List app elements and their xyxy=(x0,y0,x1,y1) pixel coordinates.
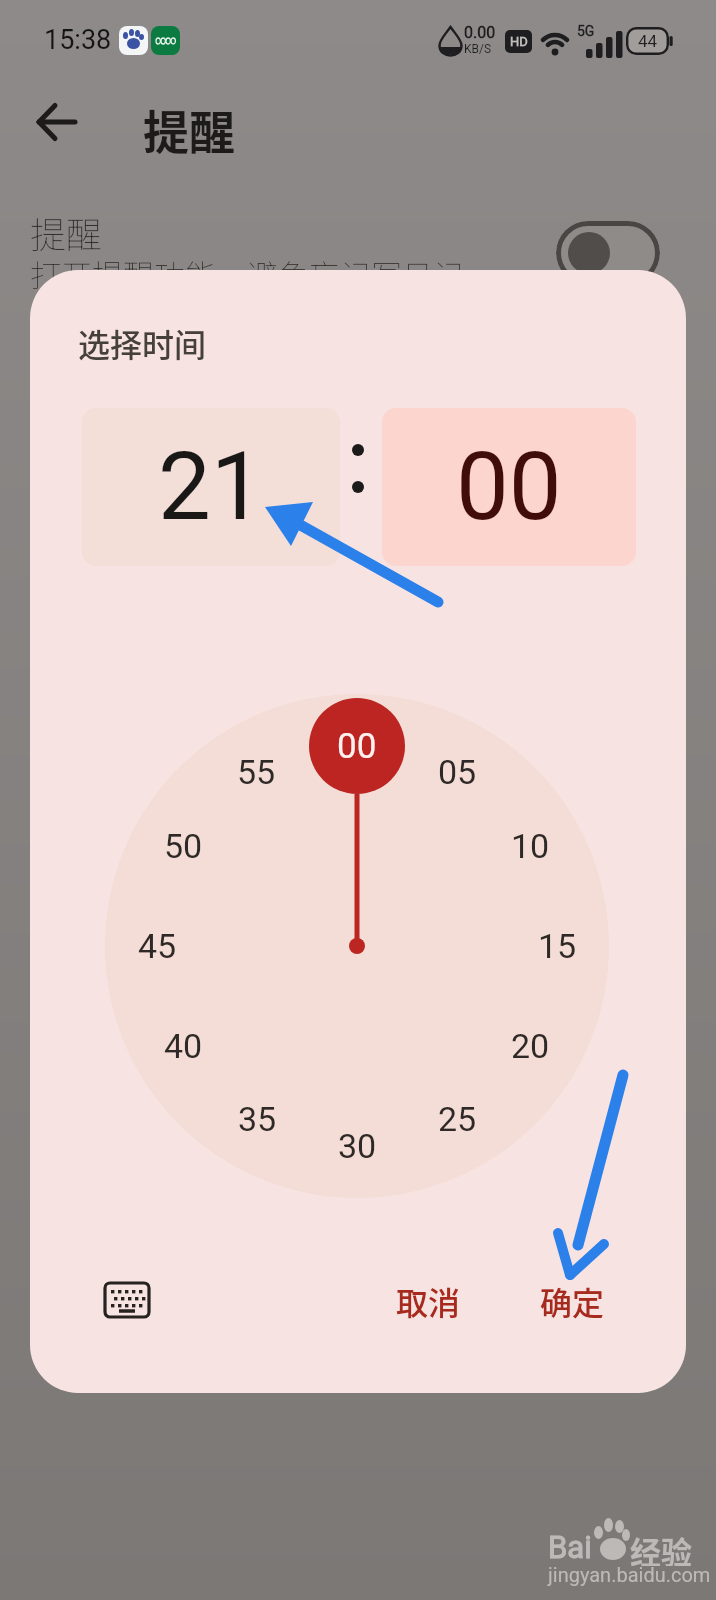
staticText: 20 xyxy=(511,1026,550,1066)
staticText: 10 xyxy=(511,826,550,866)
button[interactable]: 21 xyxy=(82,408,340,566)
staticText: HD xyxy=(510,34,528,49)
staticText: Bai xyxy=(548,1529,592,1565)
staticText: 35 xyxy=(238,1099,277,1139)
staticText: 5G xyxy=(577,23,595,39)
staticText: 45 xyxy=(138,926,177,966)
staticText: 00 xyxy=(456,432,562,542)
staticText: 15:38 xyxy=(44,24,112,56)
button[interactable] xyxy=(104,1282,150,1318)
staticText: 15 xyxy=(538,926,577,966)
staticText: 选择时间 xyxy=(78,320,207,366)
staticText: 00 xyxy=(338,726,377,766)
staticText: 30 xyxy=(338,1126,377,1166)
staticText: 40 xyxy=(164,1026,203,1066)
staticText: 经验 xyxy=(630,1528,692,1566)
button[interactable] xyxy=(556,221,660,285)
staticText: 05 xyxy=(438,752,477,792)
button[interactable]: 00 xyxy=(382,408,636,566)
staticText: 确定 xyxy=(540,1278,605,1324)
staticText: 打开提醒功能，避免忘记写日记 xyxy=(30,251,464,296)
staticText: 55 xyxy=(237,752,276,792)
button[interactable]: 取消 xyxy=(388,1276,468,1326)
staticText: 0.00 xyxy=(464,23,496,42)
staticText: 21 xyxy=(158,432,264,542)
staticText: jingyan.baidu.com xyxy=(548,1563,711,1586)
staticText: 44 xyxy=(638,31,658,51)
staticText: KB/S xyxy=(464,42,492,56)
button[interactable]: 确定 xyxy=(532,1276,612,1326)
staticText: 50 xyxy=(164,826,203,866)
staticText: 00 xyxy=(337,726,377,767)
staticText: 取消 xyxy=(396,1278,461,1324)
staticText: 提醒 xyxy=(143,96,235,158)
button[interactable]: 00 xyxy=(309,698,405,794)
button[interactable] xyxy=(36,102,78,142)
staticText: 25 xyxy=(438,1099,477,1139)
staticText: 提醒 xyxy=(30,206,103,256)
